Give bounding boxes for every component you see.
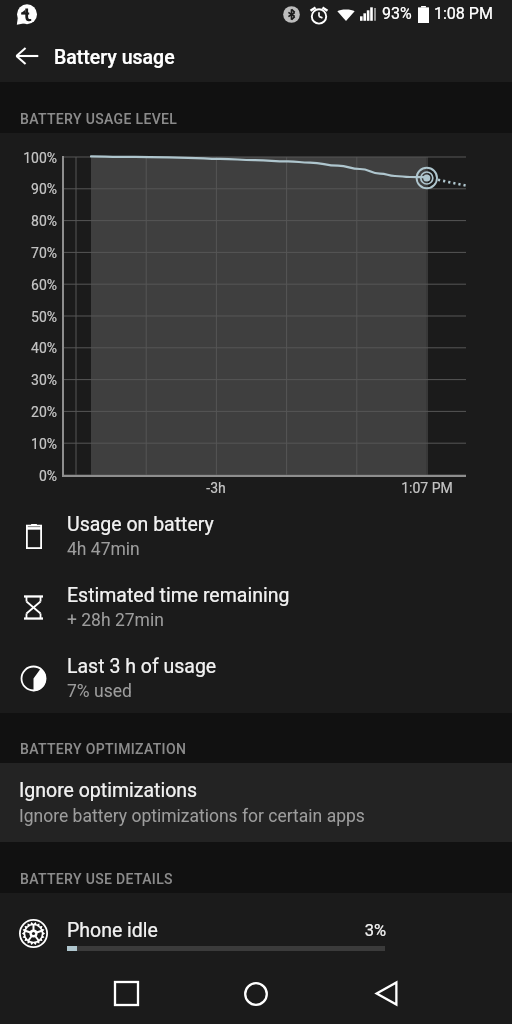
- staticText: Estimated time remaining: [67, 584, 290, 607]
- button[interactable]: Ignore optimizations: [0, 763, 512, 842]
- staticText: Phone idle: [67, 919, 158, 942]
- staticText: 60%: [0, 277, 57, 293]
- staticText: 3%: [0, 921, 386, 940]
- button[interactable]: Home: [210, 963, 302, 1024]
- staticText: Ignore optimizations: [19, 779, 198, 802]
- staticText: 80%: [0, 213, 57, 229]
- staticText: 70%: [0, 245, 57, 261]
- staticText: -3h: [196, 480, 236, 496]
- button[interactable]: Back: [4, 33, 50, 79]
- staticText: 1:07 PM: [391, 480, 463, 496]
- staticText: BATTERY USE DETAILS: [20, 871, 173, 887]
- staticText: 10%: [0, 436, 57, 452]
- button[interactable]: Recents: [80, 963, 172, 1024]
- staticText: BATTERY OPTIMIZATION: [20, 741, 187, 757]
- staticText: Ignore battery optimizations for certain…: [19, 806, 365, 827]
- staticText: Usage on battery: [67, 513, 214, 536]
- button[interactable]: Last 3 h of usage: [0, 643, 512, 713]
- staticText: 100%: [0, 150, 57, 166]
- staticText: 20%: [0, 404, 57, 420]
- staticText: 0%: [0, 468, 57, 484]
- button[interactable]: Back: [340, 963, 432, 1024]
- staticText: + 28h 27min: [67, 610, 164, 631]
- staticText: 1:08 PM: [434, 4, 493, 23]
- button[interactable]: Usage on battery: [0, 501, 512, 571]
- staticText: Battery usage: [54, 46, 175, 69]
- button[interactable]: Phone idle: [0, 893, 512, 963]
- staticText: BATTERY USAGE LEVEL: [20, 111, 178, 127]
- staticText: 90%: [0, 181, 57, 197]
- staticText: 40%: [0, 340, 57, 356]
- staticText: Last 3 h of usage: [67, 655, 217, 678]
- staticText: 4h 47min: [67, 539, 140, 560]
- staticText: 50%: [0, 309, 57, 325]
- staticText: 7% used: [67, 681, 132, 702]
- button[interactable]: Estimated time remaining: [0, 572, 512, 642]
- staticText: 93%: [382, 4, 412, 23]
- staticText: 30%: [0, 372, 57, 388]
